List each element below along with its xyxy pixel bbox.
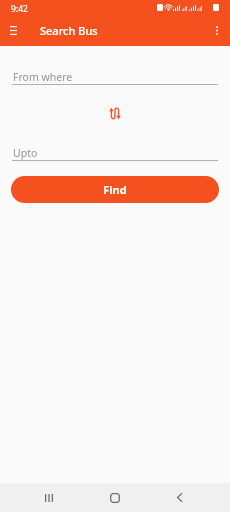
button[interactable]: Back — [167, 487, 191, 508]
button[interactable]: Home — [103, 487, 127, 508]
staticText: Upto — [13, 146, 38, 160]
staticText: 9:42 — [11, 3, 28, 15]
button[interactable]: From where — [12, 70, 218, 85]
staticText: Find — [103, 182, 127, 197]
button[interactable]: Recent apps — [37, 487, 61, 508]
button[interactable]: Find — [11, 176, 219, 203]
button[interactable]: Swap locations — [105, 103, 125, 123]
button[interactable]: More options — [205, 18, 229, 42]
button[interactable]: Upto — [12, 146, 218, 161]
button[interactable]: Open navigation menu — [1, 18, 25, 42]
staticText: Search Bus — [40, 23, 98, 38]
staticText: From where — [13, 70, 73, 84]
